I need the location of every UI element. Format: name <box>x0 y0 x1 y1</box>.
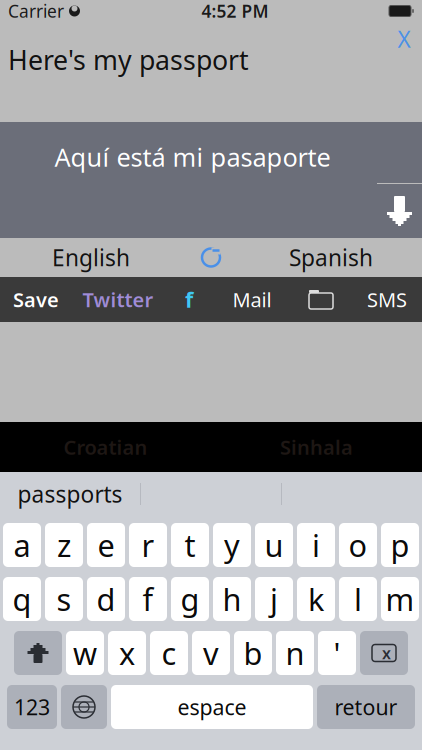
staticText: o <box>348 525 367 565</box>
button[interactable]: Twitter <box>72 277 164 322</box>
staticText: Aquí está mi pasaporte <box>54 140 330 174</box>
staticText: n <box>285 633 304 673</box>
button[interactable]: n <box>276 631 314 675</box>
button[interactable]: Swap languages <box>171 238 251 277</box>
staticText: ' <box>333 633 340 673</box>
staticText: q <box>12 579 31 619</box>
button[interactable]: Download translation <box>377 184 422 238</box>
staticText: Twitter <box>82 286 153 313</box>
button[interactable]: h <box>213 577 251 621</box>
staticText: Carrier <box>8 0 64 22</box>
button[interactable]: Save to folder <box>290 277 352 322</box>
staticText: Croatian <box>63 434 147 460</box>
button[interactable]: g <box>171 577 209 621</box>
staticText: h <box>222 579 241 619</box>
button[interactable]: c <box>150 631 188 675</box>
staticText: s <box>56 579 71 619</box>
staticText: j <box>270 579 278 619</box>
staticText: f <box>142 579 153 619</box>
staticText: p <box>390 525 409 565</box>
staticText: espace <box>177 693 246 721</box>
staticText: b <box>243 633 262 673</box>
button[interactable]: English <box>11 238 171 277</box>
staticText: x <box>382 642 391 664</box>
staticText: passports <box>17 479 122 509</box>
staticText: u <box>264 525 283 565</box>
staticText: i <box>312 525 320 565</box>
staticText <box>63 0 69 26</box>
staticText: v <box>203 633 219 673</box>
button[interactable]: f <box>129 577 167 621</box>
staticText: l <box>354 579 362 619</box>
staticText: English <box>52 242 130 272</box>
button[interactable]: SMS <box>352 277 422 322</box>
button[interactable]: Save <box>0 277 72 322</box>
button[interactable]: Delete <box>360 631 408 675</box>
button[interactable]: m <box>381 577 419 621</box>
button[interactable]: t <box>171 523 209 567</box>
staticText: k <box>308 579 324 619</box>
button[interactable]: y <box>213 523 251 567</box>
staticText: c <box>161 633 176 673</box>
staticText: Spanish <box>289 242 373 272</box>
staticText: Sinhala <box>280 434 353 460</box>
button[interactable]: Shift <box>14 631 62 675</box>
button[interactable]: u <box>255 523 293 567</box>
staticText: a <box>13 525 30 565</box>
button[interactable]: s <box>45 577 83 621</box>
staticText: Save <box>13 286 59 313</box>
button[interactable]: Spanish <box>251 238 411 277</box>
button[interactable]: 123 <box>7 685 57 729</box>
staticText: w <box>73 633 97 673</box>
staticText: Here's my passport <box>8 42 249 77</box>
button[interactable]: a <box>3 523 41 567</box>
button[interactable]: r <box>129 523 167 567</box>
button[interactable]: e <box>87 523 125 567</box>
button[interactable]: ' <box>318 631 356 675</box>
button[interactable]: d <box>87 577 125 621</box>
button[interactable]: Next keyboard <box>61 685 107 729</box>
staticText: x <box>119 633 135 673</box>
button[interactable]: espace <box>111 685 313 729</box>
button[interactable]: Clear text <box>386 22 422 56</box>
staticText: z <box>57 525 71 565</box>
button[interactable]: z <box>45 523 83 567</box>
staticText: e <box>97 525 114 565</box>
button[interactable]: x <box>108 631 146 675</box>
staticText: m <box>385 579 414 619</box>
button[interactable]: f <box>164 277 214 322</box>
button[interactable]: Mail <box>214 277 290 322</box>
staticText: 4:52 PM <box>201 0 268 22</box>
button[interactable]: passports <box>0 472 140 516</box>
staticText: X <box>397 24 410 54</box>
button[interactable]: retour <box>317 685 415 729</box>
staticText: g <box>180 579 199 619</box>
button[interactable]: w <box>66 631 104 675</box>
button[interactable]: q <box>3 577 41 621</box>
staticText: t <box>184 525 195 565</box>
button[interactable]: k <box>297 577 335 621</box>
staticText: Mail <box>232 286 271 313</box>
button[interactable]: b <box>234 631 272 675</box>
button[interactable]: o <box>339 523 377 567</box>
staticText: f <box>185 285 193 314</box>
button[interactable]: p <box>381 523 419 567</box>
staticText: 123 <box>14 693 50 721</box>
button[interactable]: v <box>192 631 230 675</box>
staticText: SMS <box>367 286 407 313</box>
staticText: retour <box>334 693 397 721</box>
button[interactable]: l <box>339 577 377 621</box>
staticText: y <box>224 525 240 565</box>
button[interactable]: j <box>255 577 293 621</box>
staticText: d <box>96 579 115 619</box>
button[interactable]: i <box>297 523 335 567</box>
staticText: r <box>141 525 154 565</box>
